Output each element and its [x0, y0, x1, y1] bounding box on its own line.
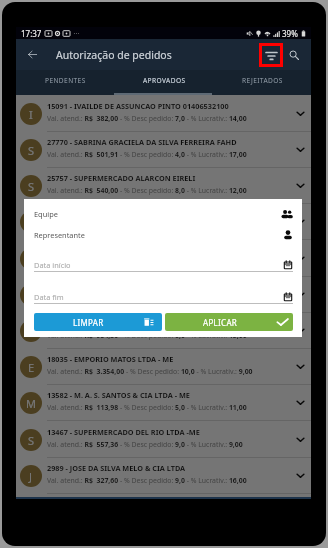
button[interactable]: Filter: [259, 43, 283, 67]
staticText: Val. atend.: R$ 540,00 - % Desc pedido: …: [47, 186, 247, 195]
button[interactable]: Data fim: [34, 290, 293, 304]
staticText: Val. atend.: R$ 557,36 - % Desc pedido: …: [47, 440, 243, 449]
staticText: C: [28, 288, 35, 303]
staticText: S: [28, 143, 35, 158]
staticText: 18035 - EMPORIO MATOS LTDA - ME: [47, 354, 174, 364]
staticText: Representante: [34, 230, 85, 240]
button[interactable]: PENDENTES: [16, 70, 115, 95]
button[interactable]: Equipe: [34, 207, 293, 221]
staticText: Val. atend.: R$ 954,30 - % Desc pedido: …: [47, 331, 247, 340]
staticText: Val. atend.: R$ 501,91 - % Desc pedido: …: [47, 150, 247, 159]
staticText: 13582 - M. A. S. SANTOS & CIA LTDA - ME: [47, 390, 190, 400]
button[interactable]: Representante: [34, 228, 293, 242]
button[interactable]: REJEITADOS: [213, 70, 311, 95]
staticText: 27770 - SABRINA GRACIELA DA SILVA FERREI…: [47, 137, 237, 147]
button[interactable]: S: [16, 168, 311, 204]
button[interactable]: J: [16, 458, 311, 494]
staticText: P: [28, 252, 35, 267]
staticText: REJEITADOS: [242, 76, 283, 85]
staticText: APLICAR: [203, 317, 238, 328]
button[interactable]: Search: [284, 45, 304, 65]
button[interactable]: S: [16, 132, 311, 168]
staticText: A: [27, 215, 35, 230]
button[interactable]: LIMPAR: [34, 313, 162, 331]
staticText: S: [28, 433, 35, 448]
staticText: Val. atend.: R$ 3.354,00 - % Desc pedido…: [47, 367, 253, 376]
button[interactable]: S: [16, 422, 311, 458]
staticText: 13467 - SUPERMERCADO DEL RIO LTDA -ME: [47, 427, 200, 437]
staticText: APROVADOS: [143, 76, 186, 85]
staticText: R: [28, 324, 35, 339]
button[interactable]: I: [16, 96, 311, 132]
staticText: S: [28, 179, 35, 194]
button[interactable]: APLICAR: [165, 313, 293, 331]
staticText: 25757 - SUPERMERCADO ALARCON EIRELI: [47, 173, 196, 183]
staticText: 17:37: [21, 28, 42, 39]
staticText: Data início: [34, 260, 71, 270]
staticText: Autorização de pedidos: [56, 48, 172, 62]
button[interactable]: P: [16, 241, 311, 277]
staticText: Data fim: [34, 292, 64, 302]
staticText: I: [29, 107, 33, 122]
staticText: 15091 - IVAILDE DE ASSUNCAO PINTO 014065…: [47, 101, 229, 111]
staticText: 10203 - ACOUGUE BOM PRECO LTDA ME: [47, 209, 188, 219]
staticText: Val. atend.: R$ 742,15 - % Desc pedido: …: [47, 295, 247, 304]
button[interactable]: APROVADOS: [115, 70, 213, 95]
staticText: LIMPAR: [73, 317, 104, 328]
button[interactable]: E: [16, 349, 311, 385]
button[interactable]: R: [16, 313, 311, 349]
staticText: Val. atend.: R$ 382,00 - % Desc pedido: …: [47, 114, 247, 123]
button[interactable]: Back: [21, 43, 44, 66]
staticText: Val. atend.: R$ 113,98 - % Desc pedido: …: [47, 403, 247, 412]
button[interactable]: Data início: [34, 258, 293, 272]
staticText: 2989 - JOSE DA SILVA MELO & CIA LTDA: [47, 463, 186, 473]
button[interactable]: A: [16, 204, 311, 240]
staticText: 39%: [282, 28, 298, 39]
button[interactable]: C: [16, 277, 311, 313]
staticText: Val. atend.: R$ 327,60 - % Desc pedido: …: [47, 476, 247, 485]
staticText: Equipe: [34, 209, 58, 219]
button[interactable]: M: [16, 385, 311, 421]
staticText: J: [29, 469, 33, 484]
staticText: M: [26, 396, 36, 411]
staticText: Val. atend.: R$ 188,40 - % Desc pedido: …: [47, 259, 247, 268]
staticText: 22014 - RESTAURANTE SABOR CASEIRO LTDA: [47, 318, 206, 328]
staticText: E: [28, 360, 35, 375]
staticText: PENDENTES: [45, 76, 86, 85]
